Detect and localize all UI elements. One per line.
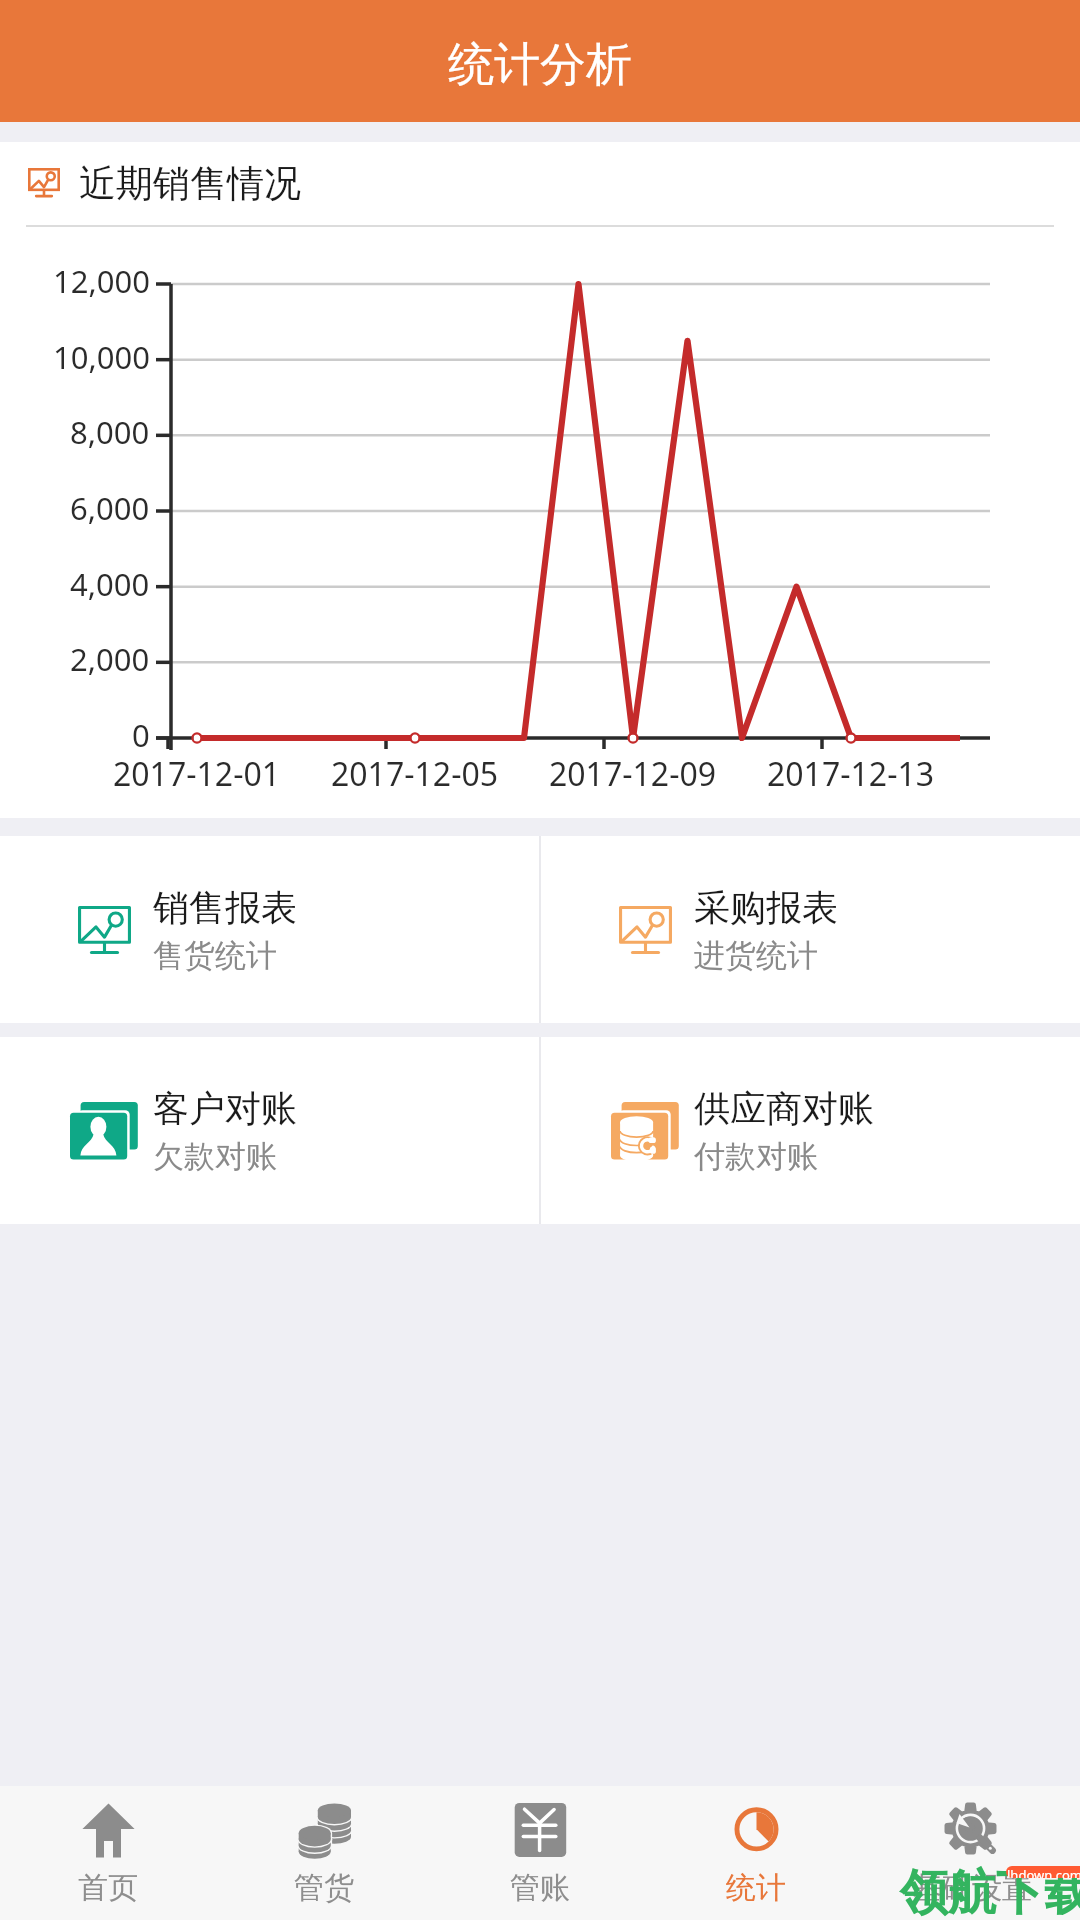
staticText: 统计 <box>726 1869 786 1907</box>
button[interactable]: 客户对账 <box>0 1037 539 1224</box>
button[interactable]: 统计 <box>648 1786 864 1920</box>
staticText: 2017-12-01 <box>113 752 281 796</box>
staticText: 基础设置 <box>912 1869 1032 1907</box>
staticText: 客户对账 <box>153 1086 297 1131</box>
staticText: 2017-12-13 <box>767 752 935 796</box>
staticText: 采购报表 <box>694 885 838 930</box>
staticText: 4,000 <box>70 563 150 605</box>
staticText: 欠款对账 <box>153 1137 277 1176</box>
staticText: 付款对账 <box>694 1137 818 1176</box>
staticText: 管货 <box>294 1869 354 1907</box>
button[interactable]: 采购报表 <box>541 836 1080 1023</box>
staticText: 0 <box>132 714 150 756</box>
button[interactable]: 首页 <box>0 1786 216 1920</box>
button[interactable]: 基础设置 <box>864 1786 1080 1920</box>
staticText: 12,000 <box>53 260 150 302</box>
staticText: 领航下载 <box>900 1863 1080 1920</box>
staticText: 2,000 <box>70 638 150 680</box>
staticText: lhdown.com <box>1007 1866 1080 1878</box>
staticText: 进货统计 <box>694 936 818 975</box>
staticText: 2017-12-05 <box>331 752 499 796</box>
staticText: 供应商对账 <box>694 1086 874 1131</box>
staticText: 近期销售情况 <box>79 160 301 207</box>
staticText: 2017-12-09 <box>549 752 717 796</box>
staticText: 管账 <box>510 1869 570 1907</box>
button[interactable]: 供应商对账 <box>541 1037 1080 1224</box>
staticText: 6,000 <box>70 487 150 529</box>
staticText: 10,000 <box>53 336 150 378</box>
staticText: 统计分析 <box>448 36 632 94</box>
staticText: 售货统计 <box>153 936 277 975</box>
button[interactable]: 管账 <box>432 1786 648 1920</box>
button[interactable]: 管货 <box>216 1786 432 1920</box>
staticText: 8,000 <box>70 411 150 453</box>
button[interactable]: 销售报表 <box>0 836 539 1023</box>
staticText: 首页 <box>78 1869 138 1907</box>
staticText: 销售报表 <box>153 885 297 930</box>
